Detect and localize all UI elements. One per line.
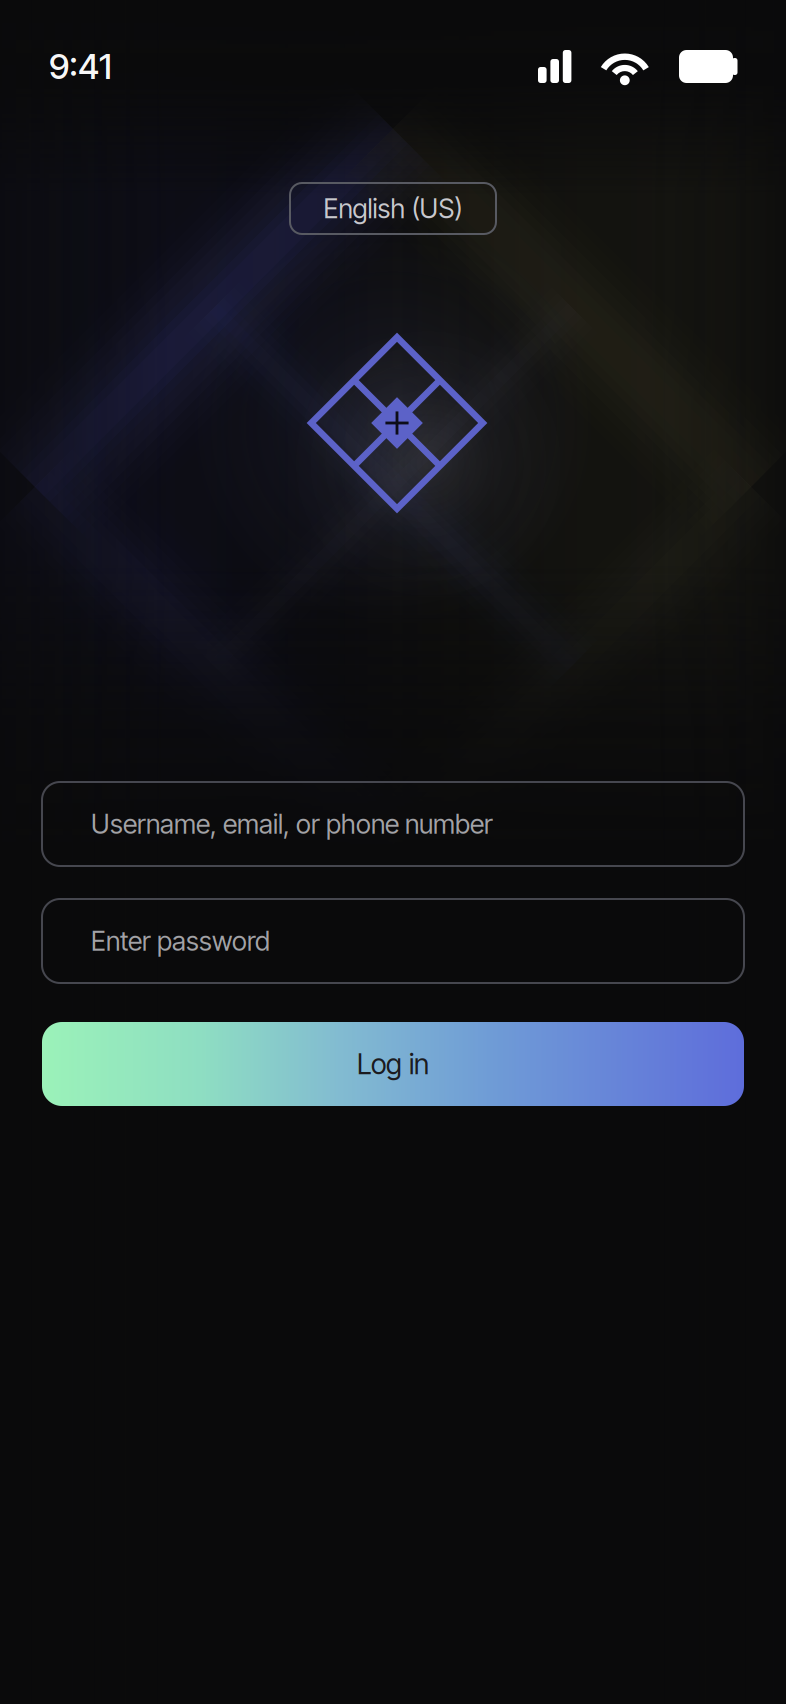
staticText: Log in xyxy=(357,1047,429,1081)
staticText: English (US) xyxy=(323,192,462,225)
button[interactable]: English (US) xyxy=(290,183,496,234)
button[interactable]: Log in xyxy=(42,1022,744,1106)
button[interactable]: Enter password xyxy=(42,899,744,983)
staticText: 9:41 xyxy=(49,45,112,87)
staticText: Username, email, or phone number xyxy=(91,808,493,840)
button[interactable]: Username, email, or phone number xyxy=(42,782,744,866)
staticText: Enter password xyxy=(91,925,270,957)
